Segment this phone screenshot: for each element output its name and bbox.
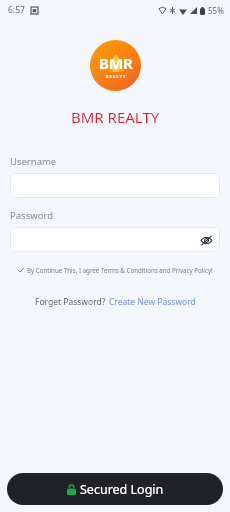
staticText: 6:57 <box>8 4 25 16</box>
staticText: R E A L T Y <box>106 74 126 79</box>
button[interactable] <box>10 173 220 198</box>
staticText: Password <box>10 209 53 222</box>
button[interactable]: Show password <box>10 227 220 252</box>
staticText: Forget Password? <box>35 296 106 308</box>
staticText: By Continue This, I agree Terms & Condit… <box>27 266 213 274</box>
staticText: Username <box>10 155 57 168</box>
staticText: BMR <box>99 53 133 73</box>
button[interactable]: Secured Login <box>7 473 223 505</box>
button[interactable]: By Continue This, I agree Terms & Condit… <box>10 266 220 274</box>
staticText: BMR REALTY <box>71 107 160 127</box>
button[interactable]: Create New Password <box>109 296 196 308</box>
staticText: Secured Login <box>80 481 164 498</box>
button[interactable]: Show password <box>198 232 214 248</box>
staticText: Create New Password <box>109 296 196 308</box>
staticText: 55% <box>208 5 224 16</box>
